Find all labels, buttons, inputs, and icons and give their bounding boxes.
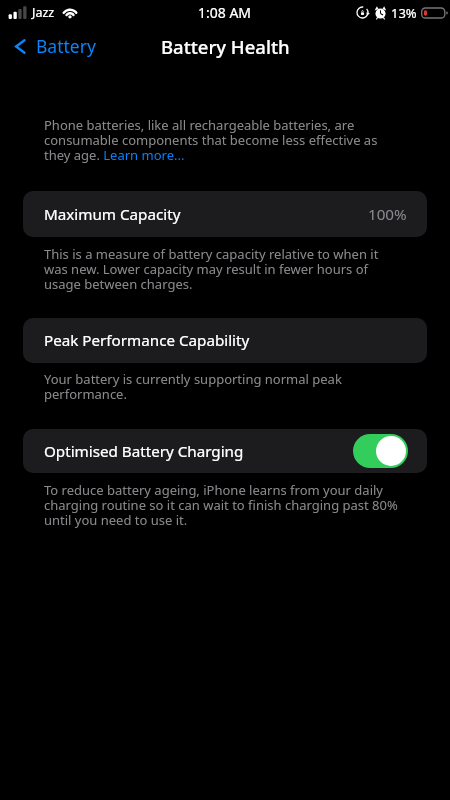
button[interactable]: Back to Battery <box>13 32 96 60</box>
button[interactable]: Optimised Battery Charging <box>23 429 427 473</box>
staticText: Phone batteries, like all rechargeable b… <box>44 116 406 164</box>
staticText: Your battery is currently supporting nor… <box>44 370 402 403</box>
staticText: Optimised Battery Charging <box>44 441 244 462</box>
staticText: 1:08 AM <box>198 3 252 22</box>
staticText: To reduce battery ageing, iPhone learns … <box>44 481 402 529</box>
staticText: Jazz <box>32 4 55 21</box>
button[interactable]: Optimised Battery Charging, on <box>353 434 408 468</box>
staticText: This is a measure of battery capacity re… <box>44 245 402 293</box>
staticText: 13% <box>391 4 417 22</box>
other: Cellular signal <box>8 6 26 20</box>
other: Rotation lock <box>356 6 369 19</box>
staticText: Maximum Capacity <box>44 204 181 225</box>
other: Wi-Fi <box>62 7 78 19</box>
button[interactable]: Peak Performance Capability <box>23 318 427 363</box>
staticText: Peak Performance Capability <box>44 330 250 351</box>
staticText: 100% <box>368 204 407 225</box>
staticText: Battery Health <box>161 34 290 59</box>
staticText: Battery <box>36 34 96 58</box>
other: Alarm set <box>374 6 387 19</box>
other: Battery 13 percent <box>421 6 448 20</box>
button[interactable]: Maximum Capacity <box>23 191 427 237</box>
